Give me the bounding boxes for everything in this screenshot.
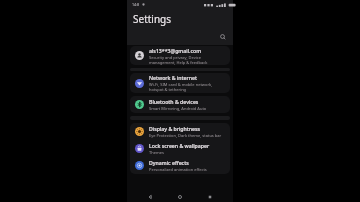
button[interactable]: Dynamic effects — [130, 157, 230, 174]
button[interactable]: Home — [173, 191, 187, 202]
button[interactable]: Display & brightness — [130, 123, 230, 140]
staticText: Display & brightness — [149, 125, 201, 132]
staticText: Settings — [133, 12, 172, 26]
staticText: Wi-Fi, SIM card & mobile network, hotspo… — [149, 82, 225, 92]
staticText: Eye Protection, Dark theme, status bar — [149, 133, 222, 138]
button[interactable]: Recent apps — [203, 191, 217, 202]
staticText: Security and privacy, Device management,… — [149, 55, 225, 65]
button[interactable]: Back — [143, 191, 157, 202]
button[interactable]: Lock screen & wallpaper — [130, 140, 230, 157]
staticText: Smart Mirroring, Android Auto — [149, 106, 207, 111]
staticText: Bluetooth & devices — [149, 98, 199, 105]
staticText: 14:8 — [132, 2, 140, 7]
staticText: als13**3@gmail.com — [149, 47, 202, 54]
staticText: Themes — [149, 150, 164, 155]
staticText: Network & internet — [149, 74, 197, 81]
button[interactable]: Network & internet — [130, 73, 230, 93]
staticText: Dynamic effects — [149, 159, 189, 166]
button[interactable]: Search settings — [127, 29, 233, 45]
button[interactable]: Bluetooth & devices — [130, 96, 230, 113]
staticText: Personalized animation effects — [149, 167, 207, 172]
button[interactable]: als13**3@gmail.com — [130, 46, 230, 65]
staticText: Lock screen & wallpaper — [149, 142, 210, 149]
